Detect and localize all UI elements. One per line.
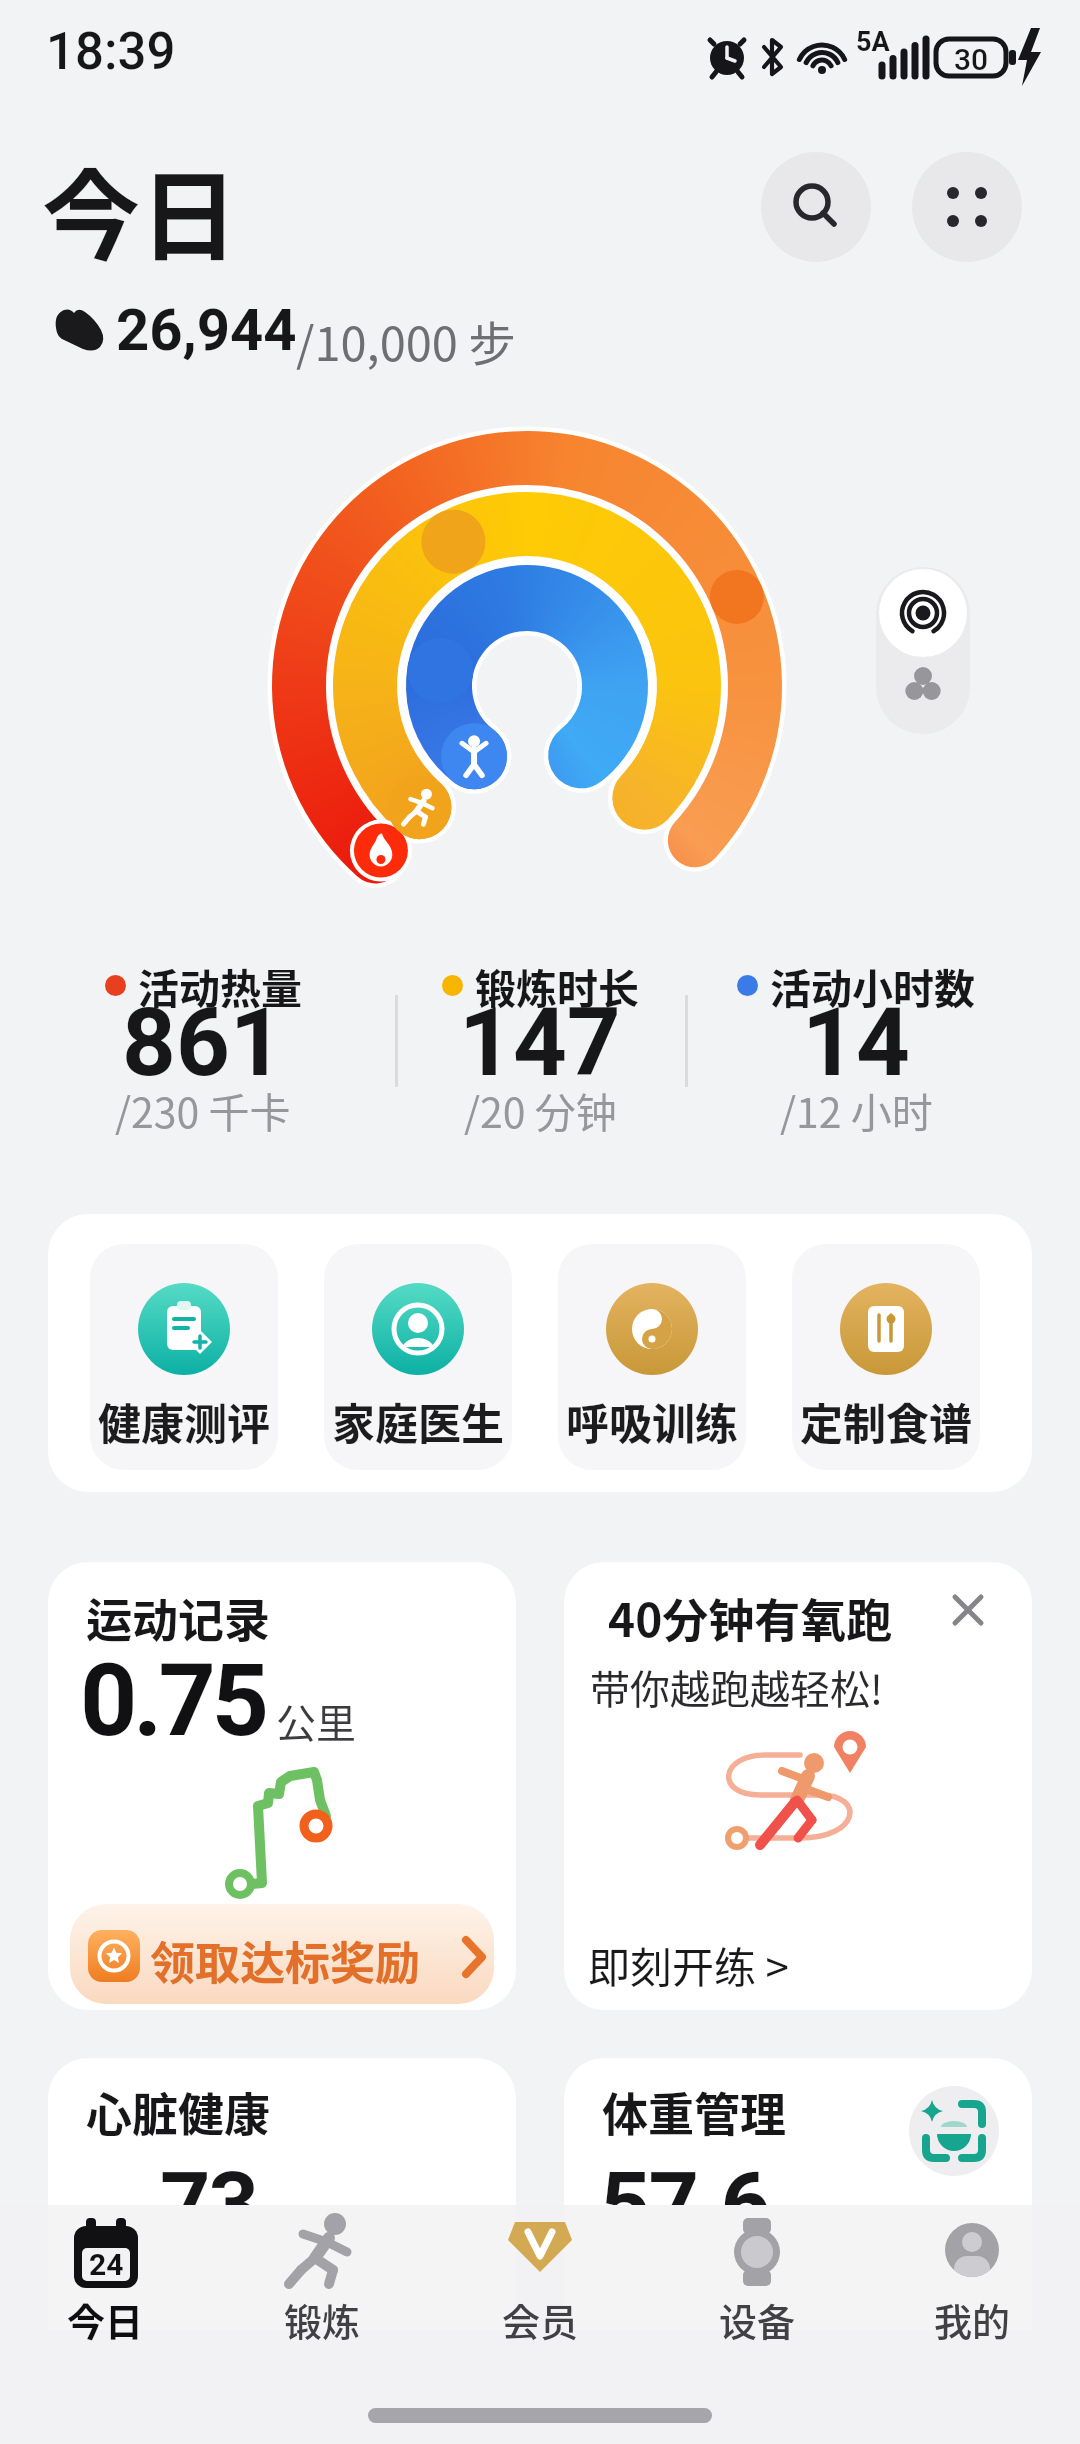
- staticText: 57.6: [600, 2152, 770, 2255]
- staticText: 活动热量: [138, 956, 302, 1015]
- button[interactable]: [564, 1562, 1032, 2010]
- button[interactable]: [761, 152, 871, 262]
- button[interactable]: [25, 2210, 185, 2340]
- button[interactable]: [70, 1904, 494, 2004]
- staticText: 设备: [719, 2292, 796, 2347]
- button[interactable]: [893, 2210, 1053, 2340]
- staticText: 健康测评: [98, 1390, 270, 1452]
- staticText: 体重管理: [602, 2078, 786, 2145]
- button[interactable]: [48, 2058, 516, 2358]
- staticText: 锻炼: [284, 2292, 361, 2347]
- staticText: 0.75: [80, 1642, 266, 1759]
- staticText: 会员: [502, 2292, 579, 2347]
- button[interactable]: [876, 567, 970, 734]
- staticText: 运动记录: [86, 1584, 270, 1651]
- staticText: 定制食谱: [800, 1390, 972, 1452]
- staticText: 呼吸训练: [566, 1390, 738, 1452]
- button[interactable]: [90, 1244, 278, 1470]
- staticText: 今日: [42, 138, 239, 280]
- staticText: /10,000 步: [296, 306, 516, 374]
- staticText: 73: [160, 2152, 257, 2255]
- button[interactable]: [792, 1244, 980, 1470]
- staticText: 领取达标奖励: [150, 1928, 421, 1993]
- button[interactable]: [242, 2210, 402, 2340]
- staticText: 14: [802, 988, 910, 1098]
- button[interactable]: [564, 2058, 1032, 2358]
- staticText: 我的: [934, 2292, 1011, 2347]
- staticText: 861: [122, 988, 284, 1098]
- staticText: 活动小时数: [770, 956, 975, 1015]
- staticText: 家庭医生: [332, 1390, 504, 1452]
- button[interactable]: [324, 1244, 512, 1470]
- staticText: 40分钟有氧跑: [608, 1584, 893, 1651]
- staticText: /12 小时: [780, 1080, 933, 1139]
- staticText: 公里: [276, 1692, 356, 1750]
- button[interactable]: [938, 1580, 998, 1640]
- staticText: 今日: [67, 2292, 144, 2347]
- staticText: 24: [89, 2247, 124, 2282]
- staticText: 147: [459, 988, 621, 1098]
- staticText: 带你越跑越轻松!: [590, 1658, 883, 1716]
- staticText: 锻炼时长: [475, 956, 639, 1015]
- button[interactable]: [459, 2210, 619, 2340]
- button[interactable]: [48, 1562, 516, 2010]
- staticText: 30: [954, 42, 989, 77]
- staticText: 即刻开练 >: [588, 1934, 789, 1995]
- staticText: 18:39: [46, 22, 176, 82]
- button[interactable]: [558, 1244, 746, 1470]
- staticText: 心脏健康: [86, 2078, 270, 2145]
- button[interactable]: [912, 152, 1022, 262]
- staticText: 26,944: [116, 296, 297, 364]
- button[interactable]: [676, 2210, 836, 2340]
- staticText: 5A: [856, 26, 890, 58]
- staticText: /20 分钟: [464, 1080, 617, 1139]
- staticText: /230 千卡: [115, 1080, 291, 1139]
